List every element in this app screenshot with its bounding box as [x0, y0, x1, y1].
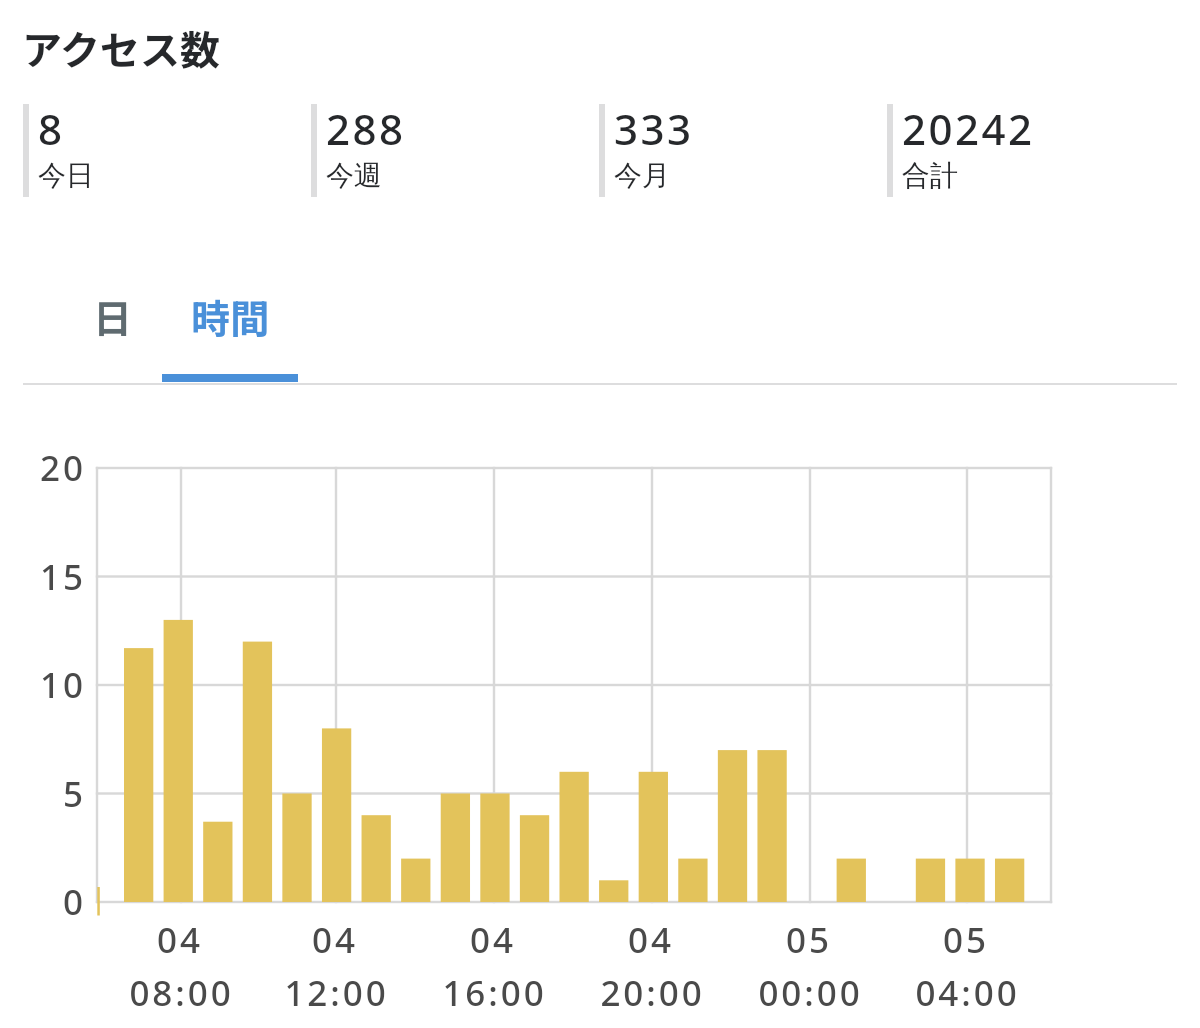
- other: Hourly access count bar chart: [0, 0, 1200, 1028]
- staticText: 時間: [191, 288, 270, 344]
- staticText: 04: [628, 916, 674, 964]
- staticText: 04: [470, 916, 516, 964]
- button[interactable]: 日: [27, 257, 199, 375]
- staticText: 0: [63, 878, 86, 922]
- button[interactable]: 時間: [162, 257, 298, 375]
- staticText: 04:00: [915, 969, 1020, 1017]
- staticText: 05: [943, 916, 989, 964]
- staticText: 20242: [902, 100, 1035, 157]
- staticText: 今月: [614, 158, 670, 193]
- staticText: 20: [40, 444, 86, 488]
- staticText: 04: [157, 916, 203, 964]
- button[interactable]: 333: [599, 104, 879, 197]
- staticText: 10: [40, 661, 86, 705]
- staticText: 12:00: [284, 969, 389, 1017]
- staticText: 5: [63, 770, 86, 814]
- staticText: 333: [614, 100, 694, 157]
- staticText: 日: [93, 288, 133, 344]
- staticText: 15: [40, 553, 86, 597]
- staticText: 04: [312, 916, 358, 964]
- staticText: 05: [786, 916, 832, 964]
- staticText: 8: [38, 100, 65, 157]
- staticText: 今週: [326, 158, 382, 193]
- staticText: 288: [326, 100, 406, 157]
- staticText: 08:00: [129, 969, 234, 1017]
- button[interactable]: 288: [311, 104, 591, 197]
- staticText: 16:00: [442, 969, 547, 1017]
- staticText: 今日: [38, 158, 94, 193]
- staticText: 00:00: [758, 969, 863, 1017]
- button[interactable]: 8: [23, 104, 303, 197]
- staticText: 合計: [902, 158, 958, 193]
- staticText: アクセス数: [22, 19, 220, 77]
- staticText: 20:00: [600, 969, 705, 1017]
- button[interactable]: 20242: [887, 104, 1167, 197]
